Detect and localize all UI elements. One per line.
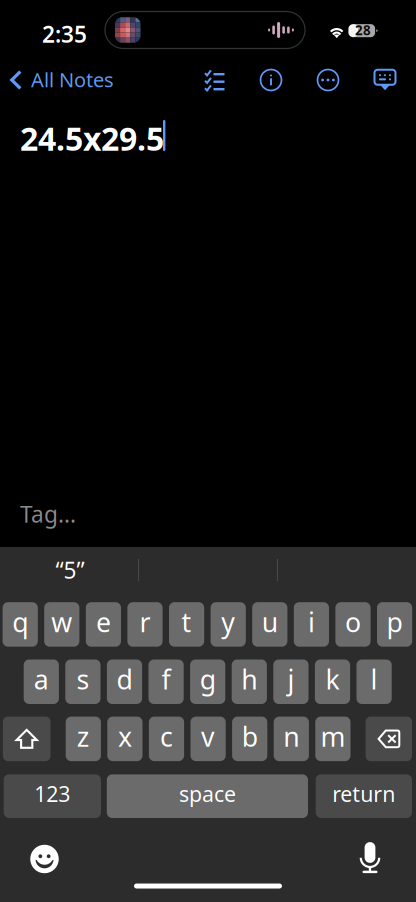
button[interactable]: return	[316, 774, 412, 818]
staticText: All Notes	[31, 66, 114, 93]
staticText: k	[325, 661, 339, 697]
button[interactable]: Dictate	[348, 836, 392, 880]
staticText: r	[139, 604, 150, 640]
button[interactable]: c	[149, 717, 184, 761]
staticText: d	[116, 661, 132, 697]
button[interactable]: w	[44, 602, 79, 647]
button[interactable]: g	[190, 659, 225, 704]
staticText: 24.5x29.5	[20, 117, 164, 159]
button[interactable]: space	[107, 774, 308, 818]
staticText: l	[371, 661, 378, 697]
button[interactable]: k	[315, 659, 350, 704]
button[interactable]: y	[211, 602, 246, 647]
button[interactable]: u	[252, 602, 287, 647]
staticText: return	[332, 779, 395, 808]
button[interactable]: “5”	[3, 549, 137, 591]
button[interactable]: h	[232, 659, 267, 704]
button[interactable]: m	[315, 717, 350, 761]
staticText: v	[201, 719, 215, 754]
button[interactable]: q	[3, 602, 38, 647]
staticText: 2:35	[42, 19, 87, 49]
button[interactable]: v	[190, 717, 226, 761]
button[interactable]: p	[377, 602, 412, 647]
button[interactable]: Info	[251, 60, 291, 100]
staticText: j	[287, 661, 294, 697]
button[interactable]: All Notes	[10, 63, 114, 97]
staticText: “5”	[55, 555, 84, 585]
staticText: x	[118, 719, 132, 754]
button[interactable]: Shift	[3, 717, 50, 761]
staticText: s	[76, 661, 89, 697]
staticText: o	[345, 604, 361, 640]
button[interactable]: a	[24, 659, 59, 704]
button[interactable]: r	[127, 602, 163, 647]
staticText: w	[51, 604, 72, 640]
button[interactable]: Hide Keyboard	[365, 60, 405, 100]
staticText: e	[96, 604, 111, 640]
button[interactable]: i	[294, 602, 329, 647]
staticText: a	[34, 661, 49, 697]
button[interactable]: Tag...	[20, 500, 110, 528]
staticText: t	[182, 604, 192, 640]
staticText: p	[387, 604, 403, 640]
staticText: space	[179, 779, 236, 808]
staticText: u	[262, 604, 278, 640]
button[interactable]: t	[169, 602, 204, 647]
button[interactable]: 123	[4, 774, 101, 818]
button[interactable]: More	[308, 60, 348, 100]
staticText: b	[242, 719, 258, 754]
button[interactable]: x	[107, 717, 142, 761]
staticText: y	[221, 604, 235, 640]
staticText: f	[162, 661, 171, 697]
staticText: i	[308, 604, 315, 640]
button[interactable]: Emoji	[22, 837, 66, 881]
staticText: c	[160, 719, 173, 754]
button[interactable]: o	[335, 602, 371, 647]
button[interactable]: b	[232, 717, 267, 761]
staticText: n	[283, 719, 299, 754]
button[interactable]: n	[274, 717, 309, 761]
button[interactable]: Checklist	[195, 59, 235, 99]
button[interactable]: f	[148, 659, 184, 704]
staticText: h	[241, 661, 257, 697]
button[interactable]: Delete	[366, 717, 412, 761]
staticText: q	[12, 604, 28, 640]
staticText: z	[77, 719, 90, 754]
button[interactable]: j	[273, 659, 308, 704]
staticText: 28	[355, 21, 371, 39]
staticText: m	[320, 719, 345, 754]
staticText: Tag...	[20, 499, 76, 529]
staticText: g	[200, 661, 216, 697]
button[interactable]: e	[86, 602, 121, 647]
button[interactable]: l	[356, 659, 392, 704]
button[interactable]: d	[107, 659, 142, 704]
staticText: 123	[34, 779, 70, 808]
button[interactable]: z	[66, 717, 101, 761]
button[interactable]: s	[65, 659, 100, 704]
